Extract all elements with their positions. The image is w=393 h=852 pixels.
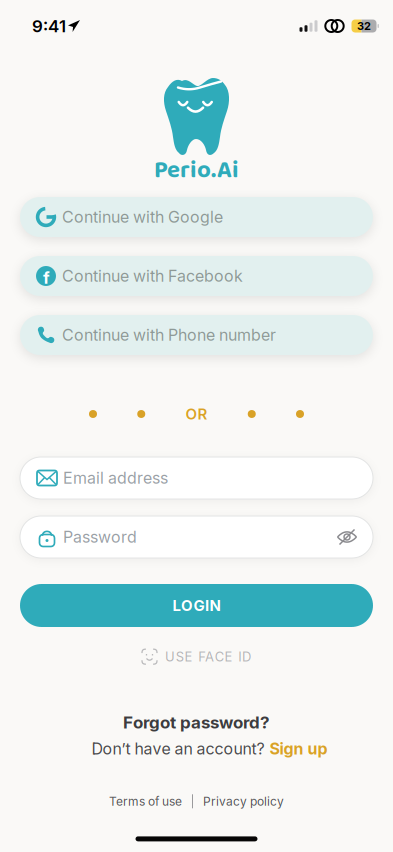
staticText: Sign up <box>269 739 327 758</box>
staticText: Continue with Facebook <box>62 267 243 285</box>
staticText: Continue with Phone number <box>62 326 276 344</box>
staticText: Password <box>63 528 137 546</box>
button[interactable]: Sign up <box>269 739 327 758</box>
staticText: 32 <box>357 19 371 32</box>
staticText: Terms of use <box>109 794 182 808</box>
staticText: 9:41 <box>32 16 66 36</box>
staticText: USE FACE ID <box>165 649 251 664</box>
button[interactable]: Privacy policy <box>203 794 284 808</box>
staticText: Continue with Google <box>62 208 223 226</box>
staticText: Don’t have an account? <box>91 739 264 758</box>
button[interactable]: LOGIN <box>20 584 373 627</box>
button[interactable]: f <box>20 256 373 296</box>
button[interactable]: USE FACE ID <box>142 649 251 664</box>
staticText: OR <box>185 405 207 423</box>
button[interactable]: Continue with Phone number <box>20 315 373 355</box>
button[interactable]: Continue with Google <box>20 197 373 237</box>
button[interactable]: Show password <box>337 528 357 546</box>
staticText: Privacy policy <box>203 794 284 808</box>
staticText: Forgot password? <box>123 712 270 732</box>
staticText: LOGIN <box>172 597 220 614</box>
button[interactable]: Terms of use <box>109 794 182 808</box>
staticText: f <box>43 267 50 288</box>
button[interactable]: Forgot password? <box>123 711 270 733</box>
staticText: Perio.Ai <box>154 151 239 190</box>
staticText: Email address <box>63 469 168 487</box>
